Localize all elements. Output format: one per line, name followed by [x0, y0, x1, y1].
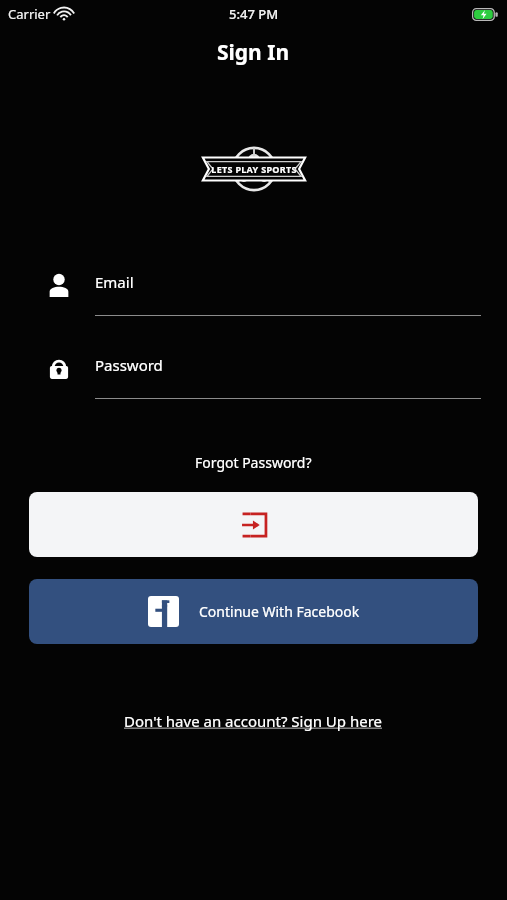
staticText: Continue With Facebook: [199, 602, 360, 621]
staticText: Carrier: [8, 5, 51, 23]
staticText: Don't have an account? Sign Up here: [124, 711, 383, 731]
button[interactable]: Sign In: [29, 492, 478, 557]
button[interactable]: Continue With Facebook: [29, 579, 478, 644]
staticText: LETS PLAY SPORTS: [211, 163, 297, 175]
button[interactable]: Forgot Password?: [187, 450, 320, 475]
button[interactable]: Password: [95, 355, 481, 399]
button[interactable]: Don't have an account? Sign Up here: [118, 708, 389, 734]
staticText: Sign In: [217, 38, 290, 67]
staticText: Forgot Password?: [195, 453, 312, 472]
staticText: 5:47 PM: [229, 5, 279, 23]
button[interactable]: Email: [95, 272, 481, 316]
staticText: Password: [95, 355, 163, 375]
staticText: Email: [95, 272, 134, 292]
